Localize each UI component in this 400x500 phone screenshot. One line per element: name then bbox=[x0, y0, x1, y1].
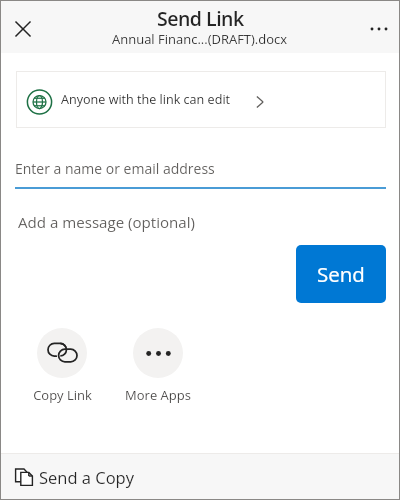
button[interactable]: Close bbox=[6, 12, 40, 46]
button[interactable]: More Apps bbox=[108, 328, 208, 404]
button[interactable]: Copy Link bbox=[12, 328, 112, 404]
staticText: Add a message (optional) bbox=[18, 212, 195, 233]
button[interactable]: More options bbox=[361, 11, 397, 47]
staticText: Anyone with the link can edit bbox=[61, 91, 231, 108]
button[interactable]: Send a Copy bbox=[0, 454, 400, 500]
staticText: Send a Copy bbox=[39, 466, 134, 488]
button[interactable]: Anyone with the link can edit bbox=[16, 71, 386, 128]
staticText: Send bbox=[317, 260, 365, 288]
staticText: Enter a name or email address bbox=[15, 159, 215, 178]
staticText: Copy Link bbox=[33, 386, 92, 404]
staticText: More Apps bbox=[125, 386, 191, 404]
button[interactable]: Send bbox=[296, 245, 386, 303]
staticText: Send Link bbox=[157, 5, 244, 32]
staticText: Annual Financ...(DRAFT).docx bbox=[112, 30, 288, 48]
